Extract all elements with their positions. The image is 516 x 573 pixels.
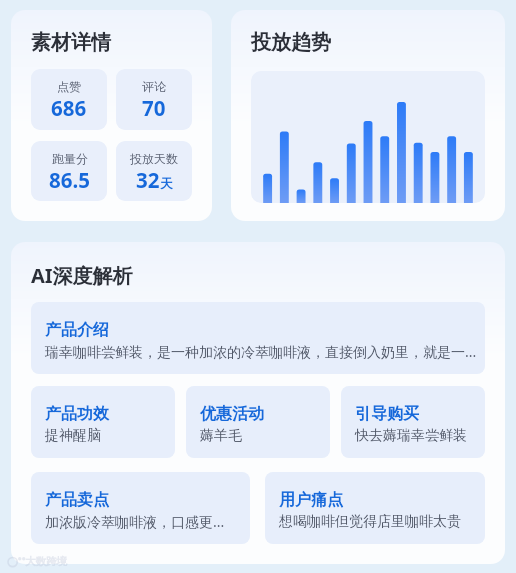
staticText: 评论 — [142, 79, 166, 94]
staticText: 投放趋势 — [251, 30, 331, 55]
staticText: 天 — [160, 176, 173, 192]
staticText: 用户痛点 — [279, 490, 343, 510]
staticText: 点赞 — [57, 79, 81, 94]
staticText: 瑞幸咖啡尝鲜装，是一种加浓的冷萃咖啡液，直接倒入奶里，就是一... — [45, 341, 477, 362]
button[interactable]: 投放天数 — [116, 141, 192, 201]
button[interactable]: 点赞 — [31, 69, 107, 130]
staticText: 投放天数 — [130, 151, 178, 166]
button[interactable]: 跑量分 — [31, 141, 107, 201]
button[interactable]: 产品功效 — [31, 386, 175, 458]
button[interactable]: 优惠活动 — [186, 386, 330, 458]
staticText: 686 — [51, 94, 87, 122]
staticText: 大数跨境 — [25, 555, 67, 568]
button[interactable]: 引导购买 — [341, 386, 485, 458]
staticText: 优惠活动 — [200, 404, 264, 424]
staticText: 86.5 — [49, 166, 90, 194]
staticText: 薅羊毛 — [200, 425, 242, 445]
staticText: 素材详情 — [31, 30, 111, 55]
staticText: 产品卖点 — [45, 490, 109, 510]
button[interactable]: 用户痛点 — [265, 472, 485, 544]
button[interactable]: 产品介绍 — [31, 302, 485, 374]
staticText: 产品介绍 — [45, 320, 109, 340]
button[interactable]: 评论 — [116, 69, 192, 130]
button[interactable]: 产品卖点 — [31, 472, 250, 544]
staticText: 70 — [142, 94, 166, 122]
staticText: AI深度解析 — [31, 262, 133, 289]
staticText: 产品功效 — [45, 404, 109, 424]
staticText: 跑量分 — [52, 151, 88, 166]
staticText: 32 — [136, 166, 160, 194]
staticText: 快去薅瑞幸尝鲜装 — [355, 425, 467, 445]
staticText: 想喝咖啡但觉得店里咖啡太贵 — [279, 511, 461, 531]
staticText: 加浓版冷萃咖啡液，口感更... — [45, 511, 225, 532]
staticText: 提神醒脑 — [45, 425, 101, 445]
staticText: 引导购买 — [355, 404, 419, 424]
